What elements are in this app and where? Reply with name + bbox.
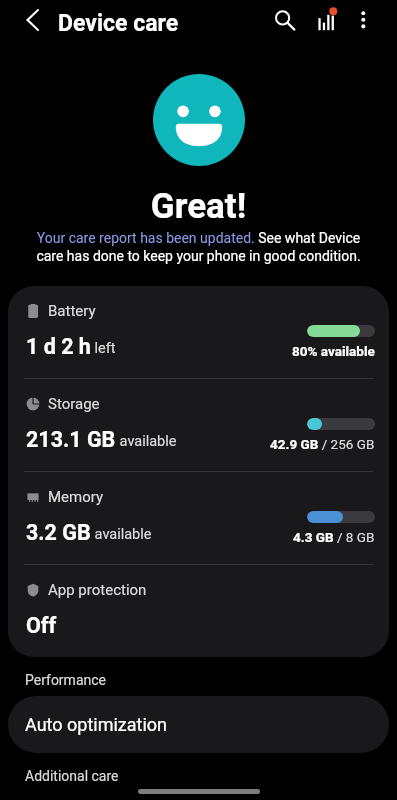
button[interactable]: Storage [8,379,389,471]
staticText: 213.1 GB [26,427,116,452]
staticText: Auto optimization [25,714,168,735]
staticText: Device care [58,10,179,37]
staticText: Storage [48,395,100,413]
staticText: Performance [25,672,106,688]
button[interactable]: Memory [8,472,389,564]
staticText: 80% available [292,343,375,359]
staticText: 42.9 GB / 256 GB [270,436,375,452]
button[interactable]: Auto optimization [8,696,389,753]
button[interactable]: Search [263,0,303,40]
button[interactable]: More options [343,0,383,40]
staticText: 3.2 GB [26,520,91,545]
staticText: available [116,433,177,450]
staticText: App protection [48,581,147,599]
staticText: available [91,526,152,543]
staticText: 4.3 GB / 8 GB [293,529,375,545]
staticText: Great! [0,186,397,227]
staticText: Battery [48,302,96,320]
button[interactable]: Usage statistics [313,0,353,40]
button[interactable]: App protection [8,565,389,657]
staticText: left [91,340,116,357]
staticText: Additional care [25,768,119,784]
staticText: Off [26,613,57,638]
staticText: Your care report has been updated. See w… [25,230,372,265]
staticText: 1 d 2 h [26,334,91,359]
button[interactable]: Back [10,0,54,40]
button[interactable]: Battery [8,286,389,378]
staticText: Memory [48,488,104,506]
